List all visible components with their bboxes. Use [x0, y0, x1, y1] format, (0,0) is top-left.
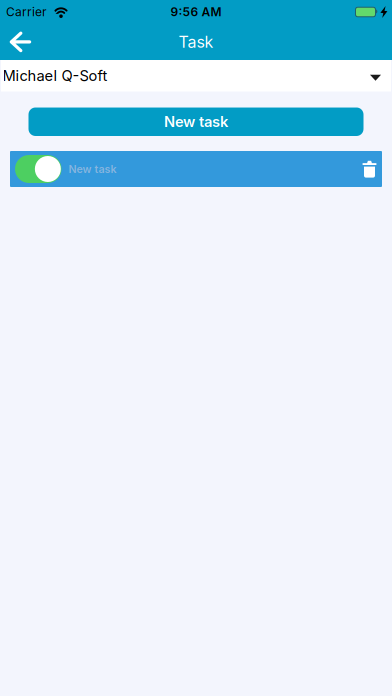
button[interactable]: New task — [28, 107, 363, 136]
staticText: New task — [164, 113, 228, 130]
staticText: Carrier — [6, 5, 47, 19]
button[interactable]: Delete task — [362, 160, 377, 178]
staticText: Task — [178, 33, 213, 51]
button[interactable]: Michael Q-Soft — [0, 60, 392, 91]
staticText: 9:56 AM — [170, 5, 221, 19]
button[interactable]: New task on — [15, 155, 61, 183]
staticText: New task — [68, 163, 116, 175]
button[interactable]: Back — [0, 24, 39, 60]
staticText: Michael Q-Soft — [2, 67, 107, 84]
